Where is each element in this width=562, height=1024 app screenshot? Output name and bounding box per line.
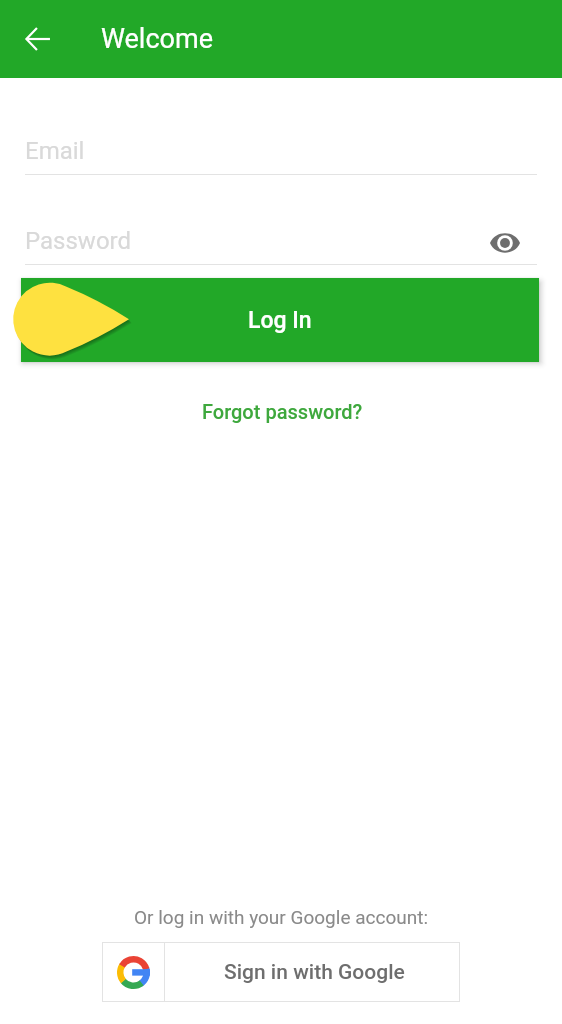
staticText: Or log in with your Google account: bbox=[134, 906, 429, 928]
staticText: Email bbox=[25, 137, 85, 165]
staticText: Sign in with Google bbox=[224, 960, 405, 985]
staticText: Password bbox=[25, 227, 132, 255]
button[interactable]: Sign in with Google bbox=[102, 942, 460, 1002]
button[interactable]: Back bbox=[14, 15, 62, 63]
staticText: Welcome bbox=[101, 23, 213, 55]
staticText: Log In bbox=[248, 307, 312, 334]
button[interactable]: Forgot password? bbox=[192, 396, 372, 426]
button[interactable]: Log In bbox=[21, 278, 539, 362]
button[interactable]: Show password bbox=[483, 221, 527, 265]
staticText: Forgot password? bbox=[202, 400, 363, 423]
